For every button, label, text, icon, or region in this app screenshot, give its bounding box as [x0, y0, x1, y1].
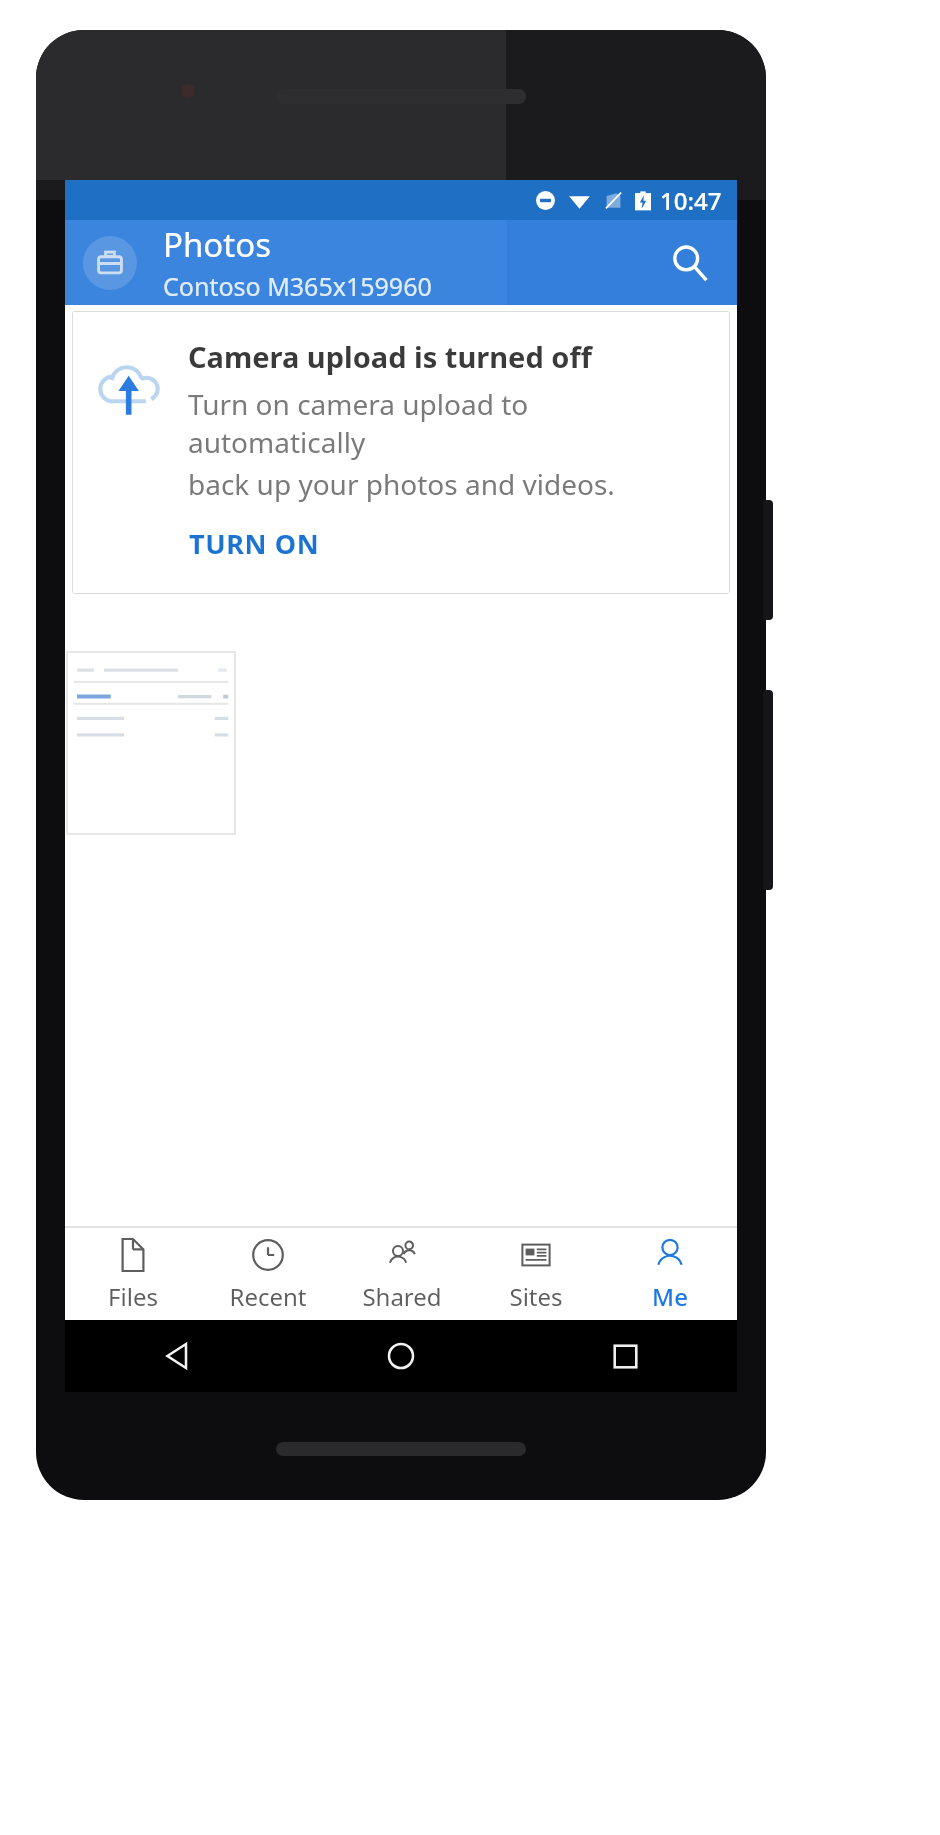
- button[interactable]: Me: [603, 1228, 737, 1320]
- staticText: Me: [652, 1280, 688, 1313]
- staticText: Shared: [362, 1280, 442, 1313]
- button[interactable]: Camera upload is turned off: [72, 311, 730, 594]
- button[interactable]: Search: [655, 228, 725, 298]
- button[interactable]: Back: [65, 1320, 289, 1392]
- staticText: Photos: [163, 222, 272, 267]
- button[interactable]: Sites: [469, 1228, 603, 1320]
- staticText: 10:47: [660, 184, 722, 217]
- button[interactable]: Recent: [200, 1228, 335, 1320]
- staticText: Camera upload is turned off: [188, 337, 592, 376]
- staticText: Contoso M365x159960: [163, 269, 432, 303]
- button[interactable]: Account: [83, 236, 137, 290]
- staticText: back up your photos and videos.: [188, 465, 615, 503]
- staticText: Files: [108, 1280, 158, 1313]
- button[interactable]: [67, 652, 235, 834]
- staticText: Recent: [229, 1280, 307, 1313]
- staticText: Turn on camera upload to automatically: [188, 385, 712, 461]
- button[interactable]: Home: [289, 1320, 513, 1392]
- button[interactable]: Files: [65, 1228, 200, 1320]
- button[interactable]: TURN ON: [188, 523, 321, 564]
- staticText: Sites: [509, 1280, 563, 1313]
- button[interactable]: Recent apps: [513, 1320, 737, 1392]
- staticText: TURN ON: [189, 525, 320, 562]
- button[interactable]: Shared: [335, 1228, 469, 1320]
